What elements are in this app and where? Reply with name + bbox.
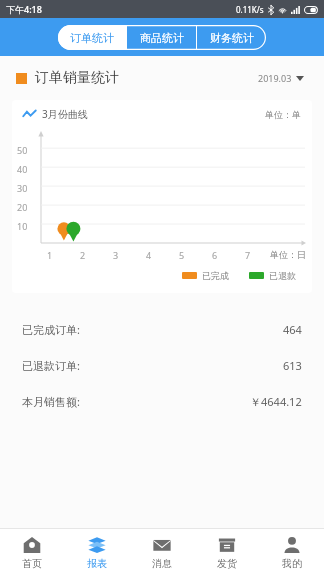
- staticText: ￥4644.12: [250, 394, 302, 409]
- button[interactable]: 商品统计: [127, 25, 196, 50]
- button[interactable]: 报表: [64, 529, 129, 576]
- staticText: 4: [146, 249, 152, 261]
- staticText: 3月份曲线: [42, 107, 88, 121]
- staticText: 已完成: [202, 270, 229, 281]
- staticText: 30: [17, 182, 28, 194]
- staticText: 613: [283, 358, 302, 373]
- staticText: 报表: [87, 557, 107, 570]
- staticText: 消息: [152, 557, 172, 570]
- button[interactable]: 财务统计: [197, 25, 266, 50]
- staticText: 7: [245, 249, 251, 261]
- staticText: 首页: [22, 557, 42, 570]
- staticText: 财务统计: [210, 31, 254, 45]
- staticText: 发货: [217, 557, 237, 570]
- staticText: 单位：日: [270, 249, 306, 260]
- staticText: 464: [283, 322, 302, 337]
- staticText: 3: [113, 249, 119, 261]
- staticText: 我的: [282, 557, 302, 570]
- button[interactable]: 订单统计: [58, 25, 126, 50]
- staticText: 已退款订单:: [22, 358, 80, 373]
- staticText: 本月销售额:: [22, 394, 80, 409]
- staticText: 50: [17, 144, 28, 156]
- staticText: 1: [47, 249, 53, 261]
- button[interactable]: 消息: [129, 529, 194, 576]
- staticText: 商品统计: [140, 31, 184, 45]
- staticText: 已退款: [269, 270, 296, 281]
- button[interactable]: 我的: [259, 529, 324, 576]
- staticText: 10: [17, 220, 28, 232]
- staticText: 2019.03: [258, 72, 292, 84]
- staticText: 订单统计: [70, 31, 114, 45]
- staticText: 40: [17, 163, 28, 175]
- staticText: 20: [17, 201, 28, 213]
- button[interactable]: 2019.03: [254, 68, 308, 88]
- staticText: 已完成订单:: [22, 322, 80, 337]
- staticText: 下午4:18: [6, 3, 42, 15]
- staticText: 0.11K/s: [236, 4, 264, 15]
- staticText: 2: [80, 249, 86, 261]
- staticText: 订单销量统计: [35, 69, 119, 87]
- staticText: 单位：单: [265, 109, 301, 120]
- staticText: 6: [212, 249, 218, 261]
- staticText: 5: [179, 249, 185, 261]
- button[interactable]: 首页: [0, 529, 64, 576]
- button[interactable]: 发货: [194, 529, 259, 576]
